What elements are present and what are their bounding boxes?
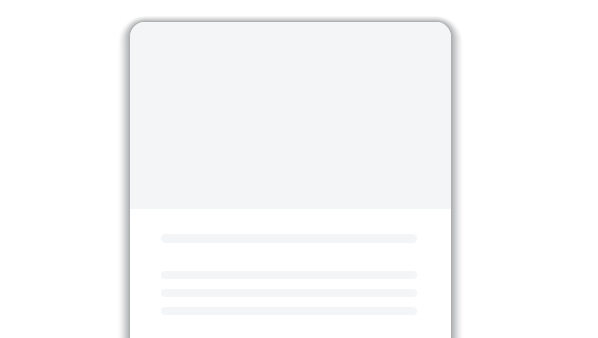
button[interactable]: Loading content card	[0, 0, 598, 338]
